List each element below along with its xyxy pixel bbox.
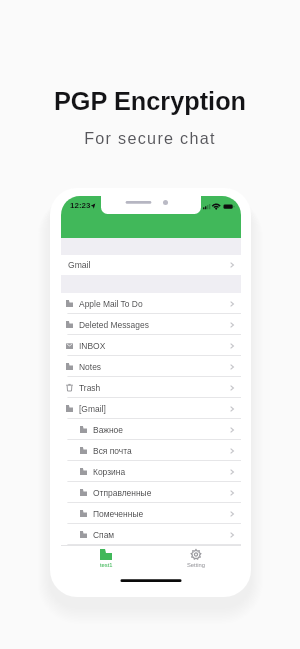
staticText: [Gmail] [79,404,106,413]
staticText: 12:23 [70,201,91,210]
staticText: test1 [100,562,113,568]
staticText: Deleted Messages [79,320,149,329]
button[interactable]: Deleted Messages [61,314,241,335]
button[interactable]: Trash [61,377,241,398]
staticText: Gmail [68,260,91,270]
button[interactable]: Спам [61,524,241,545]
button[interactable]: [Gmail] [61,398,241,419]
staticText: INBOX [79,341,106,350]
staticText: Помеченные [93,509,144,518]
staticText: Apple Mail To Do [79,299,143,308]
button[interactable]: Вся почта [61,440,241,461]
button[interactable]: Отправленные [61,482,241,503]
button[interactable]: Корзина [61,461,241,482]
staticText: Setting [187,562,206,568]
staticText: Спам [93,530,115,539]
staticText: Важное [93,425,124,434]
button[interactable]: Gmail [61,255,241,275]
button[interactable]: Важное [61,419,241,440]
button[interactable]: INBOX [61,335,241,356]
button[interactable]: Помеченные [61,503,241,524]
staticText: Notes [79,362,102,371]
button[interactable]: Apple Mail To Do [61,293,241,314]
button[interactable]: Setting [151,546,241,572]
staticText: For secure chat [0,129,300,147]
button[interactable]: Notes [61,356,241,377]
staticText: Отправленные [93,488,152,497]
staticText: Trash [79,383,101,392]
staticText: Вся почта [93,446,132,455]
staticText: PGP Encryption [0,87,300,115]
button[interactable]: test1 [61,546,151,572]
staticText: Корзина [93,467,126,476]
